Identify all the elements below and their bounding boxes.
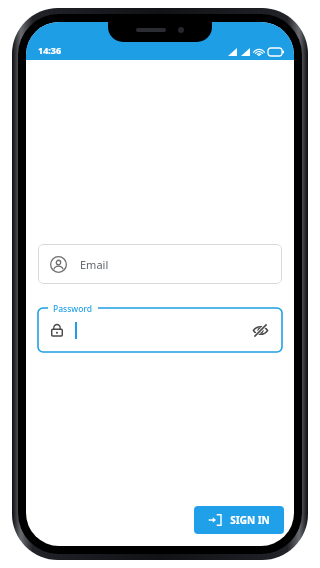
button[interactable]: Toggle password visibility bbox=[38, 308, 282, 352]
staticText: 14:36 bbox=[38, 44, 62, 56]
button[interactable]: SIGN IN bbox=[194, 506, 284, 534]
staticText: Password bbox=[53, 303, 93, 315]
button[interactable]: Toggle password visibility bbox=[249, 319, 271, 341]
staticText: SIGN IN bbox=[230, 513, 270, 527]
staticText: Email bbox=[80, 257, 109, 272]
button[interactable]: Email bbox=[38, 244, 282, 284]
